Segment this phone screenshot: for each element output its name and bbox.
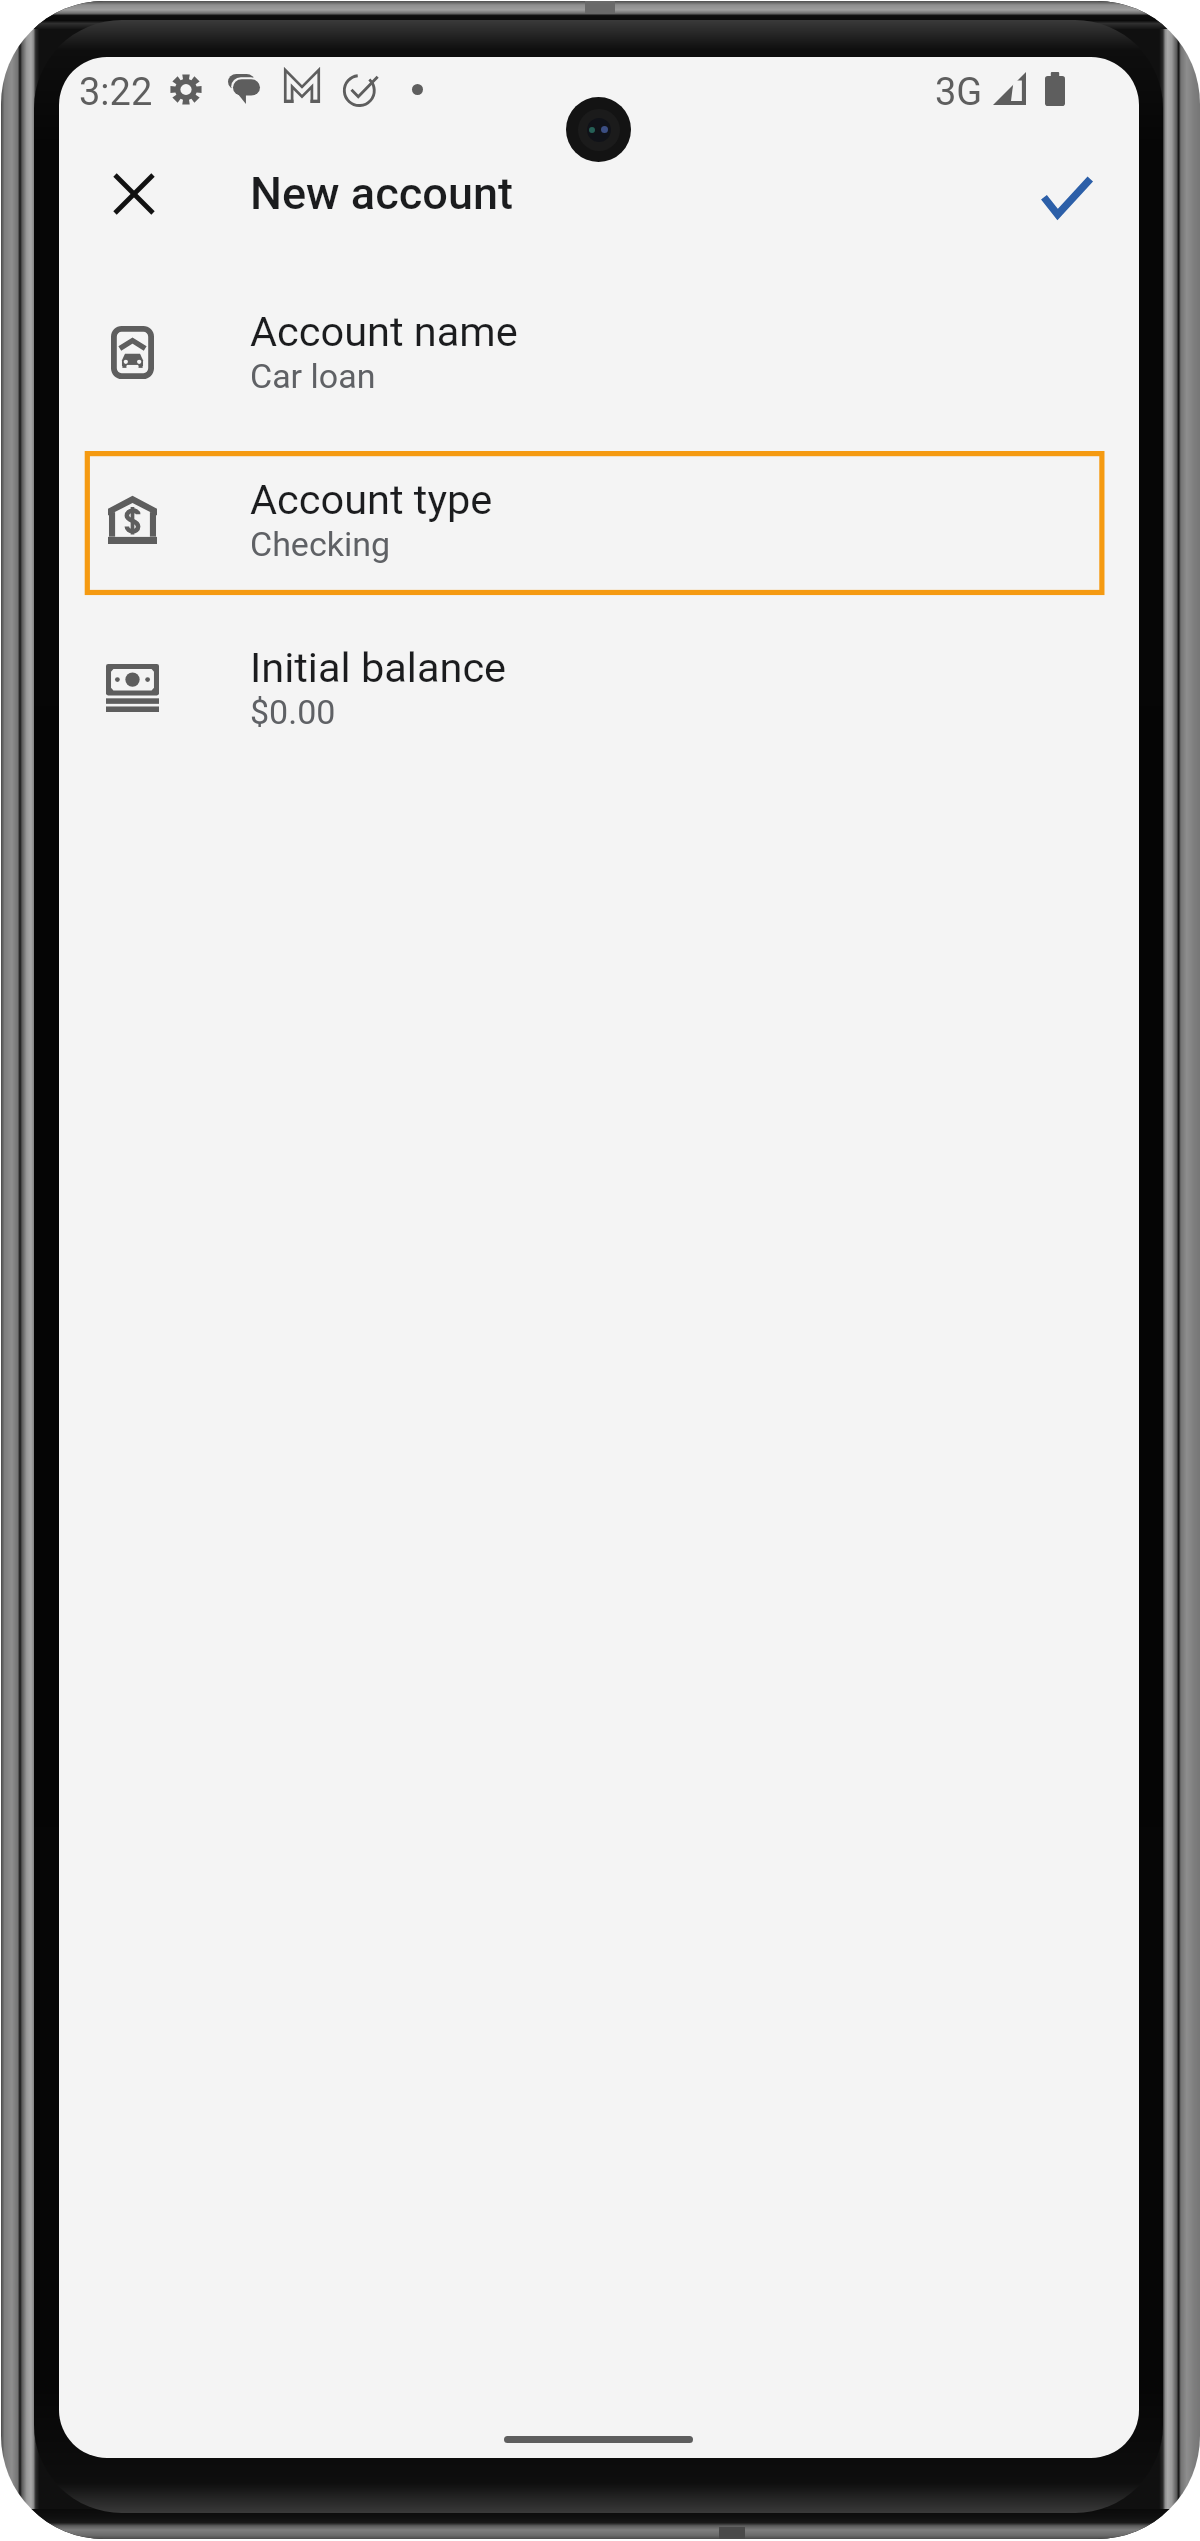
button[interactable]: Close (80, 140, 188, 248)
button[interactable]: Save account (1013, 142, 1121, 250)
button[interactable]: Account name (59, 271, 1139, 439)
staticText: 3:22 (79, 70, 153, 115)
staticText: Account name (250, 307, 518, 356)
staticText: New account (250, 167, 513, 220)
staticText: Checking (250, 524, 391, 564)
staticText: Car loan (250, 356, 376, 396)
button[interactable]: Initial balance (59, 607, 1139, 775)
button[interactable]: Account type (59, 439, 1139, 607)
staticText: $0.00 (250, 692, 336, 732)
staticText: 3G (935, 70, 983, 115)
staticText: Account type (250, 475, 493, 524)
staticText: Initial balance (250, 643, 507, 692)
